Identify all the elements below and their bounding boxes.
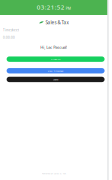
button[interactable]: Logout: [7, 77, 105, 82]
staticText: Sales & Tax: [45, 19, 68, 26]
staticText: Timesheet: [3, 28, 19, 32]
staticText: Clock In: [51, 57, 60, 61]
staticText: Hi, Lac Pascual!: [40, 44, 67, 50]
staticText: 0:00:00: [3, 35, 15, 39]
staticText: Powered by Sales & Tax: [42, 172, 66, 175]
staticText: 03:21:52: [37, 3, 65, 11]
button[interactable]: View Timesheet: [7, 68, 105, 73]
staticText: View Timesheet: [48, 69, 64, 72]
staticText: Logout: [53, 78, 59, 81]
staticText: PM: [66, 6, 71, 11]
button[interactable]: Clock In: [7, 56, 105, 62]
